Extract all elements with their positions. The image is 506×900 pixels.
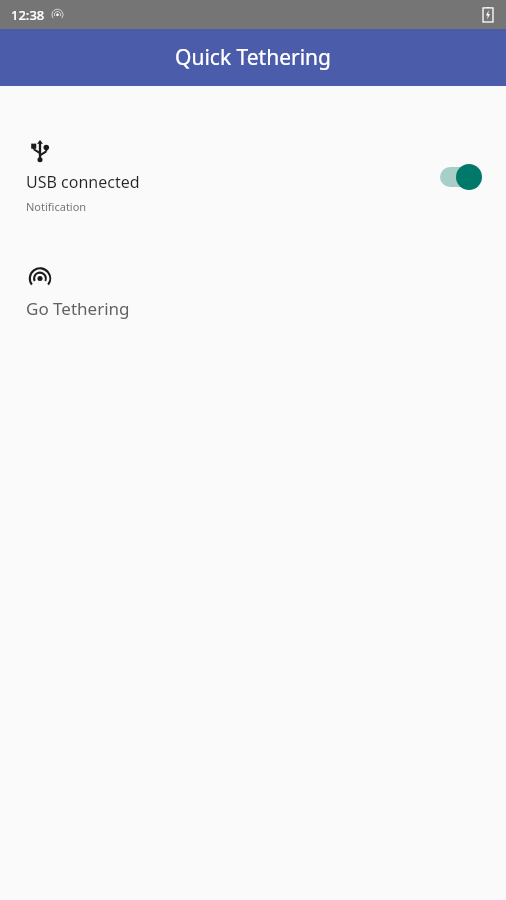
button[interactable]: Tethering (0, 260, 506, 326)
button[interactable]: USB tethering toggle (434, 159, 486, 195)
staticText: Quick Tethering (175, 43, 331, 72)
staticText: 12:38 (11, 6, 45, 24)
other: USB (29, 140, 51, 162)
button[interactable]: USB (0, 134, 506, 220)
other: Tethering (28, 266, 52, 290)
staticText: Go Tethering (26, 297, 130, 320)
staticText: USB connected (26, 171, 140, 193)
staticText: Notification (26, 199, 87, 214)
